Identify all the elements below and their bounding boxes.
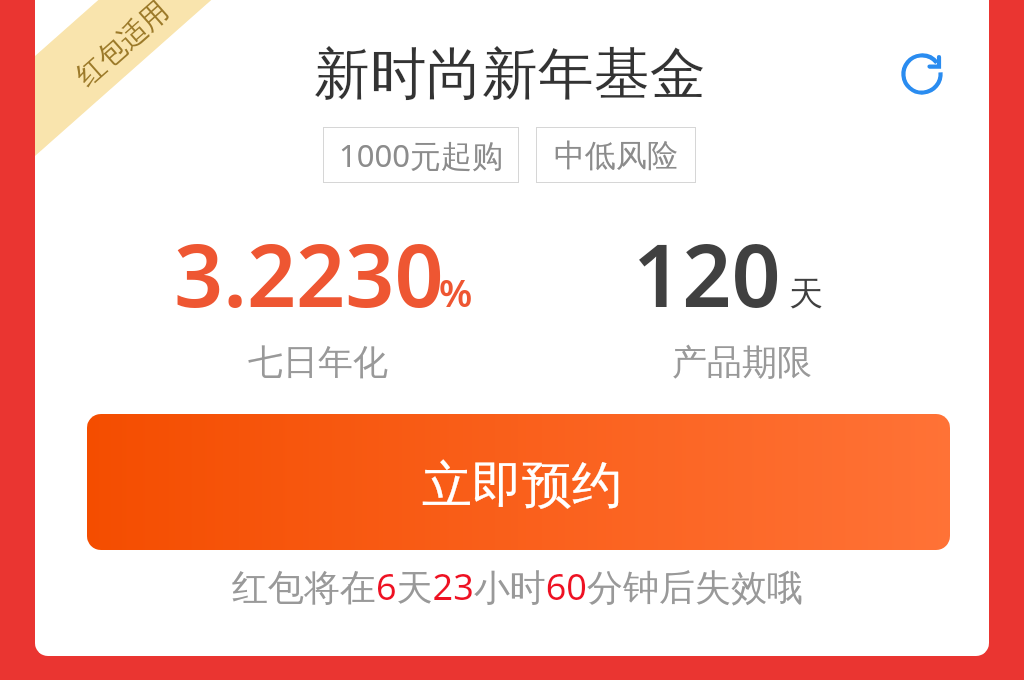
staticText: 3.2230	[174, 215, 444, 332]
staticText: 新时尚新年基金	[314, 39, 706, 110]
staticText: 天	[789, 272, 823, 315]
button[interactable]: 立即预约	[87, 414, 950, 550]
staticText: 七日年化	[248, 340, 388, 384]
staticText: 1000元起购	[339, 134, 503, 176]
staticText: %	[439, 266, 473, 318]
staticText: 红包适用	[69, 0, 176, 94]
button[interactable]: 1000元起购	[323, 127, 519, 183]
button[interactable]: Refresh	[898, 50, 946, 98]
button[interactable]: 中低风险	[536, 127, 696, 183]
staticText: 红包将在6天23小时60分钟后失效哦	[232, 562, 803, 611]
staticText: 立即预约	[422, 454, 622, 517]
staticText: 120	[633, 215, 781, 332]
staticText: 产品期限	[672, 340, 812, 384]
staticText: 中低风险	[554, 136, 678, 175]
